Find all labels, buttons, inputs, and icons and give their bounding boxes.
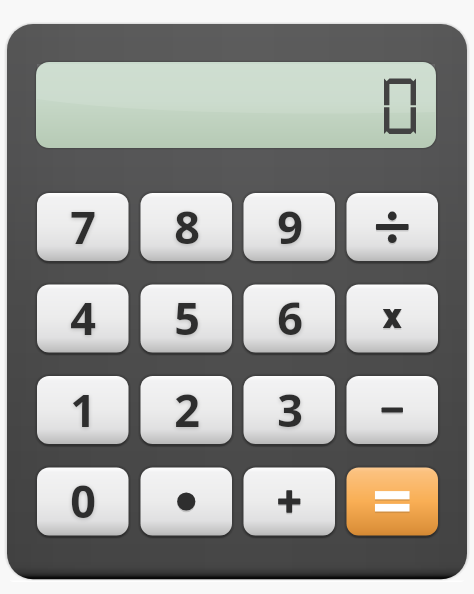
button[interactable]: Equals: [347, 466, 439, 534]
staticText: 2: [174, 379, 200, 440]
button[interactable]: 4: [37, 283, 129, 351]
button[interactable]: Divide: [347, 192, 439, 260]
button[interactable]: 1: [37, 375, 129, 443]
staticText: 4: [70, 287, 96, 348]
button[interactable]: Subtract: [347, 375, 439, 443]
staticText: 9: [277, 196, 303, 257]
staticText: 5: [174, 287, 200, 348]
staticText: 3: [277, 379, 303, 440]
button[interactable]: 0: [37, 466, 129, 534]
button[interactable]: 5: [141, 283, 233, 351]
staticText: 0: [70, 470, 96, 531]
button[interactable]: 7: [37, 192, 129, 260]
button[interactable]: 6: [244, 283, 336, 351]
button[interactable]: 8: [141, 192, 233, 260]
staticText: 1: [70, 379, 96, 440]
button[interactable]: 2: [141, 375, 233, 443]
button[interactable]: Decimal point: [141, 466, 233, 534]
button[interactable]: 9: [244, 192, 336, 260]
button[interactable]: 3: [244, 375, 336, 443]
button[interactable]: Multiply: [347, 283, 439, 351]
staticText: 8: [174, 196, 200, 257]
staticText: 7: [70, 196, 96, 257]
staticText: 6: [277, 287, 303, 348]
button[interactable]: Add: [244, 466, 336, 534]
